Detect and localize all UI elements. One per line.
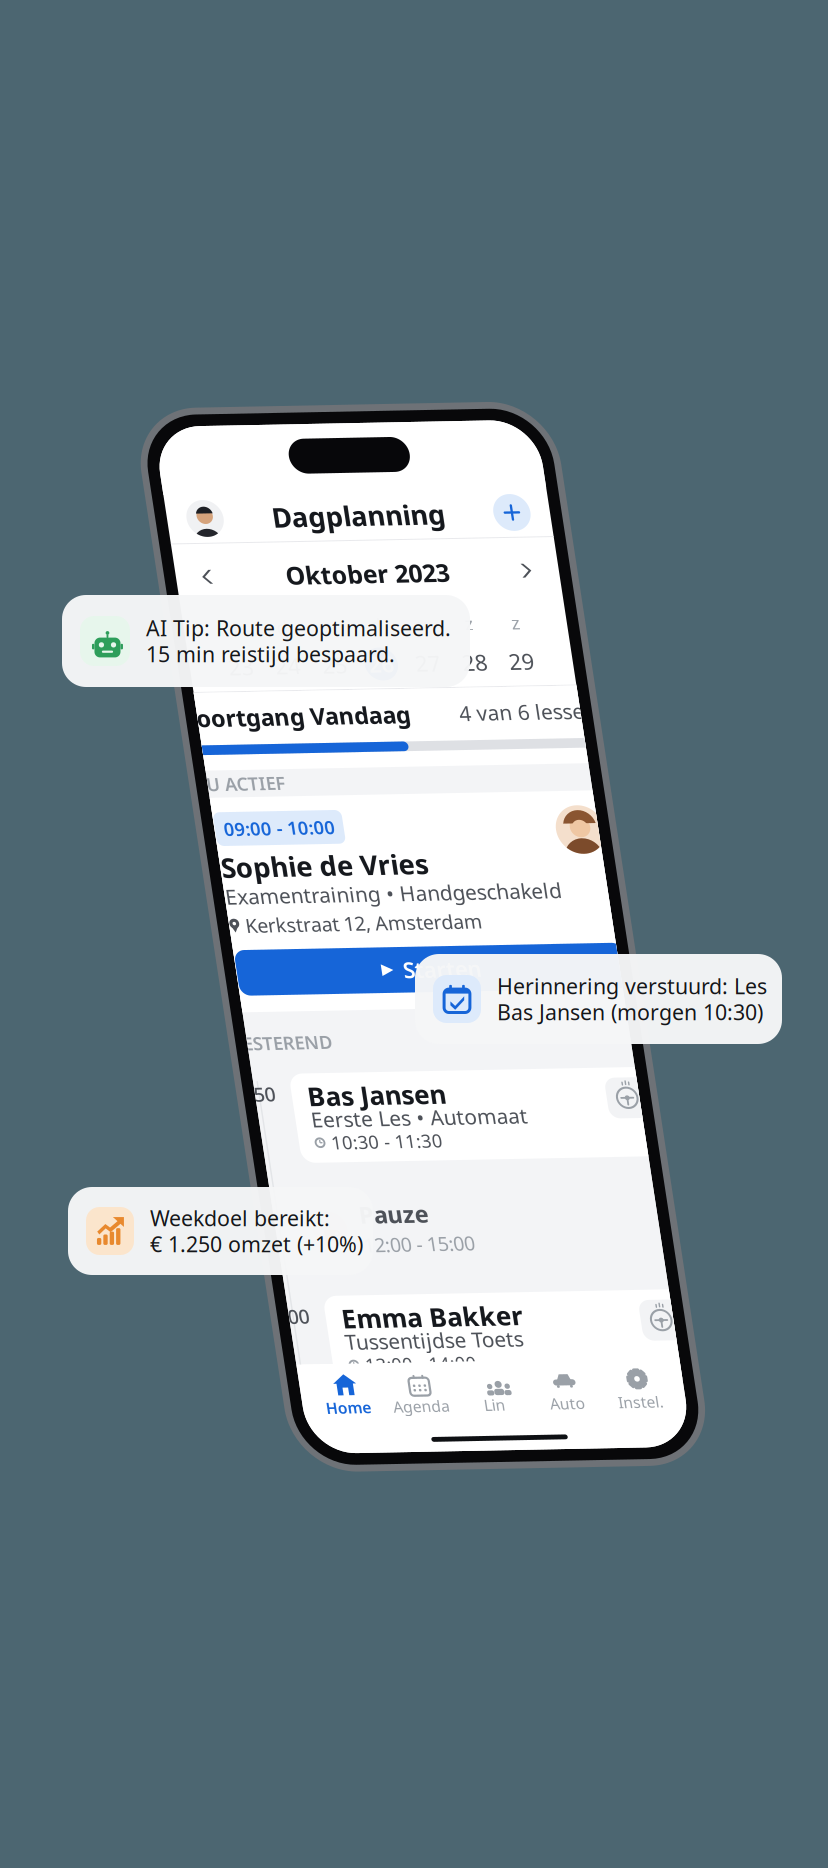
staticText: Kerkstraat 12, Amsterdam [169,927,412,954]
staticText: Eerste Les • Automaat [206,1127,428,1156]
button[interactable]: v [373,616,421,700]
staticText: Bas Jansen [206,1100,348,1135]
staticText: Dagplanning [260,503,438,541]
button[interactable]: z [469,616,517,700]
staticText: Agenda [245,1427,303,1449]
staticText: d [344,623,355,647]
button[interactable]: Auto [387,1397,462,1451]
staticText: 23 [192,660,218,690]
staticText: € 1.250 omzet (+10%) [150,1230,363,1258]
staticText: Oktober 2023 [265,565,433,599]
staticText: 09:00 - 10:00 [162,829,276,854]
staticText: 12:00 - 15:00 [240,1258,354,1285]
staticText: 13:00 - 14:00 [223,1382,337,1407]
staticText: RESTEREND [136,1050,240,1074]
button[interactable]: Instel. [462,1397,537,1451]
button[interactable]: Vorige maand [169,564,205,600]
button[interactable]: d [325,616,373,700]
staticText: Instel. [476,1427,522,1449]
staticText: 25 [288,660,314,690]
staticText: Bas Jansen (morgen 10:30) [497,998,763,1026]
button[interactable]: d [229,616,277,700]
button[interactable]: Profiel [173,503,211,541]
staticText: 24 [240,660,266,690]
button[interactable]: Lin [312,1397,387,1451]
staticText: NU ACTIEF [136,783,232,807]
staticText: v [393,623,402,647]
button[interactable]: m [181,616,229,700]
staticText: 28 [432,660,458,690]
staticText: 15 min reistijd bespaard. [146,640,395,668]
staticText: Pauze [240,1224,311,1256]
staticText: z [441,623,450,647]
staticText: m [197,623,214,647]
button[interactable]: Toevoegen [488,503,526,541]
button[interactable]: 09:00 - 10:00 [131,809,567,1030]
staticText: d [248,623,259,647]
button[interactable]: Bas Jansen [190,1094,570,1186]
staticText: Sophie de Vries [153,862,366,899]
staticText: 27 [384,660,410,690]
staticText: Auto [406,1427,442,1449]
staticText: Emma Bakker [206,1329,392,1364]
staticText: Weekdoel bereikt: [150,1204,330,1232]
staticText: Examentraining • Handgeschakeld [153,897,498,925]
staticText: 4 van 6 lessen [421,713,562,741]
staticText: Herinnering verstuurd: Les [497,972,767,1000]
staticText: Starten [324,974,404,1004]
button[interactable]: Emma Bakker [190,1323,570,1415]
button[interactable]: z [421,616,469,700]
staticText: AI Tip: Route geoptimaliseerd. [146,614,451,642]
staticText: Tussentijdse Toets [206,1356,389,1385]
staticText: w [294,623,309,647]
button[interactable]: Volgende maand [494,564,530,600]
staticText: 10:30 - 11:30 [223,1153,337,1178]
button[interactable]: w [277,616,325,700]
staticText: 29 [480,660,506,690]
staticText: Voortgang Vandaag [136,711,371,743]
staticText: 26 [336,660,362,690]
button[interactable]: Agenda [237,1397,312,1451]
